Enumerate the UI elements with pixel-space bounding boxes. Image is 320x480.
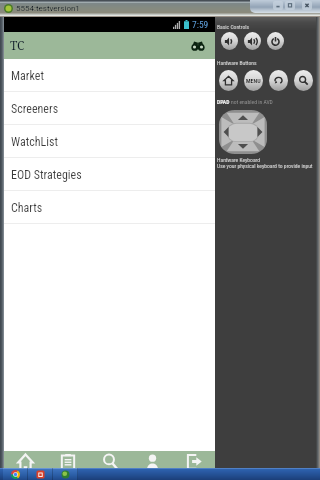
staticText: Hardware Keyboard: [217, 157, 261, 164]
button[interactable]: Screeners: [4, 92, 215, 125]
staticText: 7:59: [192, 19, 209, 30]
button[interactable]: Search: [89, 451, 131, 469]
staticText: Use your physical keyboard to provide in…: [217, 163, 313, 170]
staticText: Basic Controls: [217, 24, 250, 31]
staticText: Screeners: [11, 102, 59, 116]
staticText: DPAD: [217, 99, 231, 106]
staticText: WatchList: [11, 135, 59, 149]
staticText: Hardware Buttons: [217, 60, 257, 67]
staticText: 5554:testversion1: [16, 4, 80, 13]
button[interactable]: Menu: [244, 70, 263, 91]
button[interactable]: Home: [219, 70, 238, 91]
staticText: EOD Strategies: [11, 168, 82, 182]
staticText: TC: [10, 37, 25, 53]
button[interactable]: Search: [294, 70, 313, 91]
button[interactable]: Market: [4, 59, 215, 92]
button[interactable]: Search: [188, 37, 208, 55]
button[interactable]: Volume up: [244, 32, 261, 50]
staticText: not enabled in AVD: [231, 99, 273, 106]
button[interactable]: Charts: [4, 191, 215, 224]
staticText: MENU: [246, 77, 261, 84]
button[interactable]: Google Chrome: [3, 468, 28, 480]
button[interactable]: Home: [4, 451, 47, 469]
button[interactable]: App: [28, 468, 53, 480]
button[interactable]: Volume down: [221, 32, 238, 50]
button[interactable]: Close: [302, 1, 312, 10]
button[interactable]: App: [53, 468, 78, 480]
button[interactable]: Maximize: [285, 1, 295, 10]
staticText: Market: [11, 69, 44, 83]
button[interactable]: Power: [267, 32, 284, 50]
button[interactable]: Reports: [47, 451, 89, 469]
staticText: Charts: [11, 201, 43, 215]
button[interactable]: WatchList: [4, 125, 215, 158]
button[interactable]: Profile: [131, 451, 173, 469]
button[interactable]: Back: [269, 70, 288, 91]
button[interactable]: EOD Strategies: [4, 158, 215, 191]
button[interactable]: Minimize: [273, 1, 283, 10]
button[interactable]: Logout: [173, 451, 215, 469]
